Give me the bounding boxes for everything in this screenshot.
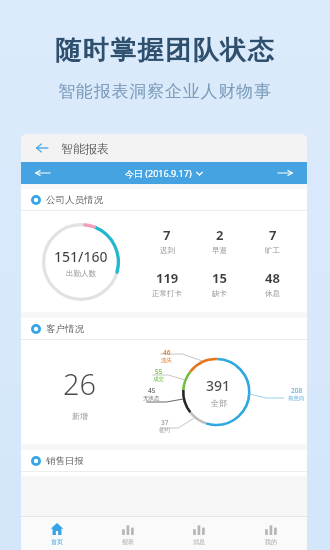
button[interactable]: 报表: [92, 517, 163, 550]
button[interactable]: Next day: [263, 162, 307, 184]
staticText: 新增: [72, 411, 88, 421]
staticText: 26: [63, 364, 97, 403]
staticText: 报表: [122, 538, 134, 546]
staticText: 119: [156, 269, 179, 287]
staticText: 首页: [51, 538, 63, 546]
staticText: 迟到: [160, 246, 175, 255]
staticText: 208: [291, 386, 303, 395]
staticText: 2: [216, 226, 224, 244]
staticText: 45: [148, 386, 156, 395]
button[interactable]: 首页: [21, 517, 92, 550]
button[interactable]: 15: [193, 269, 246, 298]
staticText: 55: [155, 367, 163, 376]
button[interactable]: 消息: [163, 517, 235, 550]
staticText: 全部: [211, 398, 227, 408]
button[interactable]: 7: [246, 226, 299, 255]
staticText: 有意向: [288, 395, 305, 402]
staticText: 缺卡: [212, 289, 227, 298]
staticText: 智能报表洞察企业人财物事: [0, 81, 330, 102]
staticText: 7: [269, 226, 277, 244]
staticText: 15: [212, 269, 227, 287]
staticText: 无状态: [143, 395, 160, 402]
staticText: 我的: [265, 538, 277, 546]
button[interactable]: 公司人员情况: [31, 189, 307, 210]
button[interactable]: Previous day: [21, 162, 65, 184]
staticText: 签约: [159, 427, 170, 434]
button[interactable]: Previous day: [21, 162, 307, 184]
staticText: 48: [265, 269, 280, 287]
button[interactable]: 客户情况: [31, 318, 307, 339]
button[interactable]: 我的: [235, 517, 307, 550]
staticText: 消息: [193, 538, 205, 546]
staticText: 随时掌握团队状态: [0, 34, 330, 67]
staticText: 公司人员情况: [46, 194, 103, 206]
button[interactable]: 48: [246, 269, 299, 298]
button[interactable]: 2: [193, 226, 246, 255]
staticText: 391: [206, 376, 231, 395]
staticText: 今日 (2016.9.17): [125, 167, 192, 179]
staticText: 客户情况: [46, 323, 84, 335]
staticText: 出勤人数: [66, 269, 96, 278]
button[interactable]: 119: [141, 269, 193, 298]
staticText: 销售日报: [46, 455, 84, 467]
staticText: 智能报表: [61, 141, 109, 156]
staticText: 休息: [265, 289, 280, 298]
staticText: 46: [163, 348, 171, 357]
staticText: 正常打卡: [152, 289, 182, 298]
staticText: 旷工: [265, 246, 280, 255]
button[interactable]: 7: [141, 226, 193, 255]
staticText: 151/160: [54, 247, 108, 266]
staticText: 成交: [153, 376, 164, 383]
button[interactable]: Back: [31, 137, 53, 159]
staticText: 37: [161, 418, 169, 427]
staticText: 7: [163, 226, 171, 244]
staticText: 早退: [212, 246, 227, 255]
staticText: 流失: [161, 357, 172, 364]
button[interactable]: 销售日报: [31, 450, 307, 471]
